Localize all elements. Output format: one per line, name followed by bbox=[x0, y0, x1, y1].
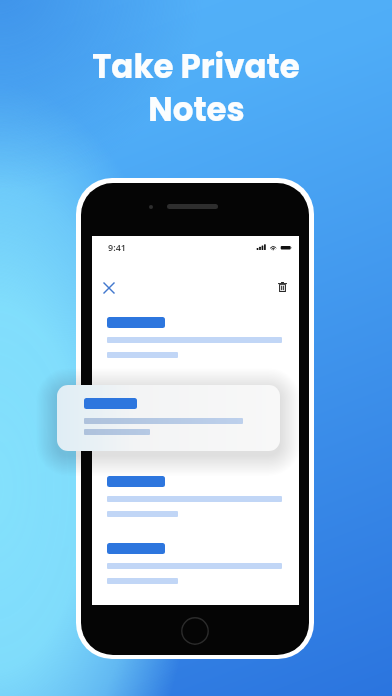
button[interactable]: Close bbox=[94, 273, 123, 302]
staticText: Notes bbox=[148, 87, 245, 133]
button[interactable] bbox=[107, 476, 282, 517]
staticText: 9:41 bbox=[108, 241, 126, 253]
button[interactable] bbox=[107, 543, 282, 584]
button[interactable]: Delete bbox=[268, 272, 297, 301]
button[interactable] bbox=[107, 317, 282, 358]
button[interactable] bbox=[57, 385, 280, 451]
staticText: Take Private bbox=[92, 44, 300, 90]
